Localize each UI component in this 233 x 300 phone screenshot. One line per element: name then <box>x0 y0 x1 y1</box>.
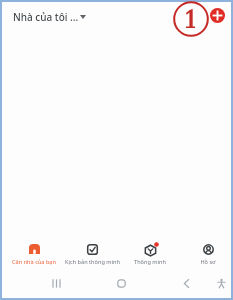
button[interactable]: Back <box>177 274 195 292</box>
button[interactable]: Add device <box>207 5 227 25</box>
button[interactable]: Recents <box>47 274 65 292</box>
staticText: Hồ sơ <box>200 258 216 266</box>
button[interactable]: Kịch bản thông minh <box>63 241 121 271</box>
button[interactable]: Accessibility <box>212 274 230 292</box>
staticText: Căn nhà của bạn <box>12 258 56 266</box>
button[interactable]: Căn nhà của bạn <box>5 241 63 271</box>
staticText: Kịch bản thông minh <box>65 258 120 266</box>
button[interactable]: Thông minh <box>121 241 179 271</box>
staticText: Thông minh <box>134 258 166 266</box>
button[interactable]: Hồ sơ <box>179 241 233 271</box>
button[interactable]: Home <box>112 274 130 292</box>
button[interactable]: Nhà của tôi ... <box>12 8 87 26</box>
staticText: Nhà của tôi ... <box>13 10 79 24</box>
